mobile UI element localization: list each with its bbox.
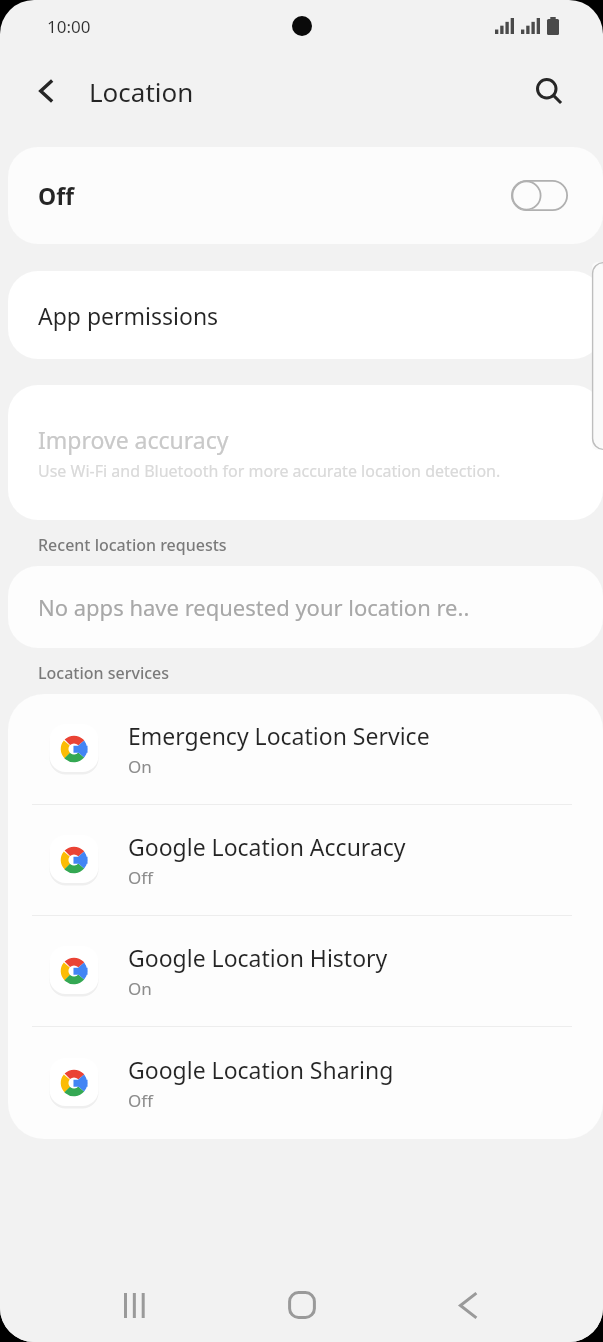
button[interactable]: Recent apps <box>102 1272 168 1338</box>
staticText: Improve accuracy <box>38 424 229 455</box>
staticText: On <box>128 755 152 778</box>
staticText: 10:00 <box>47 15 91 38</box>
staticText: No apps have requested your location re.… <box>38 592 470 622</box>
button[interactable]: Home <box>269 1272 335 1338</box>
button[interactable]: Back <box>22 65 74 117</box>
button[interactable]: Off <box>8 147 603 244</box>
staticText: Location <box>89 74 194 109</box>
staticText: App permissions <box>38 300 219 331</box>
button[interactable]: Google Location Sharing <box>8 1027 603 1139</box>
button[interactable]: Back <box>435 1272 501 1338</box>
button[interactable]: Improve accuracy <box>8 385 603 520</box>
button[interactable]: Emergency Location Service <box>8 694 603 804</box>
staticText: Google Location Sharing <box>128 1054 394 1085</box>
staticText: Off <box>38 180 74 211</box>
button[interactable]: Google Location History <box>8 916 603 1026</box>
button[interactable]: App permissions <box>8 271 603 359</box>
staticText: Location services <box>38 662 170 684</box>
staticText: On <box>128 977 152 1000</box>
staticText: Emergency Location Service <box>128 720 430 751</box>
staticText: Use Wi-Fi and Bluetooth for more accurat… <box>38 460 501 482</box>
staticText: Off <box>128 1089 153 1112</box>
button[interactable]: Google Location Accuracy <box>8 805 603 915</box>
button[interactable]: Search <box>522 64 576 118</box>
staticText: Google Location Accuracy <box>128 831 406 862</box>
staticText: Off <box>128 866 153 889</box>
button[interactable]: No apps have requested your location re.… <box>8 566 603 648</box>
staticText: Google Location History <box>128 942 388 973</box>
staticText: Recent location requests <box>38 534 227 556</box>
